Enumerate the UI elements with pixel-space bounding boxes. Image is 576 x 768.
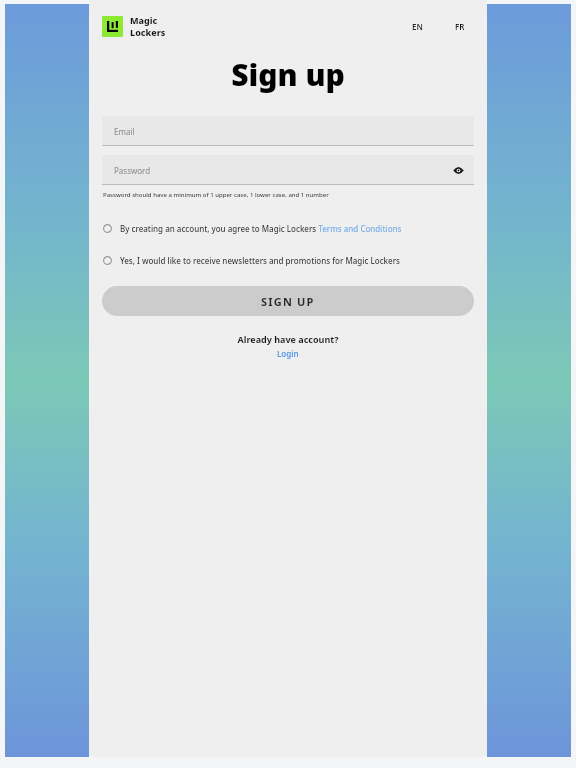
button[interactable]: Login [269, 347, 307, 360]
button[interactable]: Password [102, 155, 474, 185]
button[interactable]: FR [449, 17, 471, 36]
button[interactable]: Email [102, 116, 474, 146]
staticText: Password should have a minimum of 1 uppe… [103, 191, 329, 199]
staticText: Yes, I would like to receive newsletters… [120, 255, 400, 266]
staticText: SIGN UP [261, 294, 315, 309]
staticText: Already have account? [89, 333, 487, 345]
button[interactable]: Yes, I would like to receive newsletters… [89, 251, 487, 270]
staticText: EN [412, 21, 423, 32]
staticText: Login [277, 348, 299, 359]
button[interactable]: SIGN UP [102, 286, 474, 316]
staticText: Email [114, 126, 135, 137]
staticText: Password [114, 165, 151, 176]
button[interactable]: Show password [450, 162, 466, 178]
staticText: Magic [130, 14, 158, 26]
staticText: FR [455, 21, 465, 32]
button[interactable]: By creating an account, you agree to Mag… [89, 219, 487, 238]
staticText: Sign up [89, 54, 487, 95]
button[interactable]: EN [406, 17, 429, 36]
staticText: By creating an account, you agree to Mag… [120, 223, 402, 234]
button[interactable]: Magic [102, 14, 166, 38]
staticText: Lockers [130, 26, 166, 38]
